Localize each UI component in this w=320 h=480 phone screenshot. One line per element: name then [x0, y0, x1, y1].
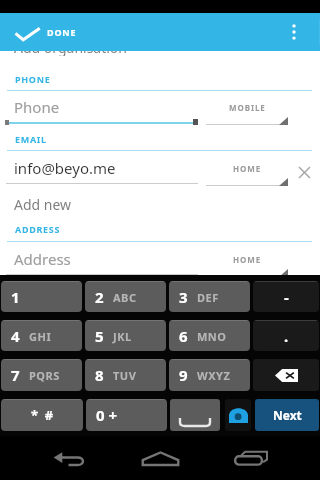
staticText: DONE: [47, 26, 77, 38]
button[interactable]: DONE: [0, 13, 93, 51]
staticText: Add new: [14, 195, 72, 214]
staticText: info@beyo.me: [14, 158, 116, 178]
staticText: WXYZ: [197, 368, 231, 383]
staticText: 9: [179, 365, 188, 385]
staticText: Address: [14, 249, 71, 269]
staticText: Add organisation: [14, 38, 127, 56]
staticText: 7: [11, 365, 20, 385]
staticText: -: [284, 287, 289, 307]
button[interactable]: * #: [1, 399, 83, 431]
staticText: Next: [273, 407, 302, 423]
button[interactable]: Space: [170, 399, 220, 431]
button[interactable]: 1: [1, 281, 82, 312]
staticText: ADDRESS: [15, 223, 61, 235]
staticText: PQRS: [29, 368, 60, 383]
button[interactable]: 6: [169, 320, 250, 351]
staticText: TUV: [113, 368, 137, 383]
staticText: * #: [31, 406, 54, 424]
staticText: MNO: [197, 329, 227, 344]
button[interactable]: .: [253, 320, 319, 351]
staticText: ABC: [113, 290, 137, 305]
staticText: PHONE: [15, 73, 51, 85]
button[interactable]: -: [253, 281, 319, 312]
staticText: 4: [11, 326, 20, 346]
button[interactable]: 4: [1, 320, 82, 351]
button[interactable]: Delete email: [290, 158, 318, 186]
staticText: EMAIL: [15, 133, 47, 145]
staticText: 2: [95, 287, 104, 307]
button[interactable]: 3: [169, 281, 250, 312]
button[interactable]: Backspace: [253, 359, 319, 391]
button[interactable]: Image input: [225, 399, 251, 431]
button[interactable]: Recent apps: [220, 443, 280, 473]
staticText: 6: [179, 326, 188, 346]
staticText: HOME: [233, 254, 262, 265]
button[interactable]: MOBILE: [206, 97, 288, 125]
button[interactable]: HOME: [206, 158, 288, 186]
button[interactable]: 0 +: [86, 399, 167, 431]
button[interactable]: Add new: [0, 195, 320, 215]
staticText: 1: [11, 287, 20, 307]
button[interactable]: 9: [169, 359, 250, 391]
staticText: Phone: [14, 97, 60, 117]
staticText: .: [284, 326, 289, 346]
button[interactable]: 2: [85, 281, 166, 312]
staticText: 8: [95, 365, 104, 385]
staticText: 3: [179, 287, 188, 307]
staticText: 0 +: [96, 405, 118, 425]
button[interactable]: Back: [38, 443, 98, 473]
staticText: JKL: [113, 329, 132, 344]
button[interactable]: Next: [255, 399, 319, 431]
button[interactable]: More options: [268, 13, 320, 51]
button[interactable]: 7: [1, 359, 82, 391]
button[interactable]: Add organisation: [0, 38, 320, 56]
staticText: GHI: [29, 329, 52, 344]
staticText: 5: [95, 326, 104, 346]
staticText: HOME: [233, 163, 262, 174]
staticText: MOBILE: [229, 102, 266, 113]
button[interactable]: Home: [130, 443, 190, 473]
button[interactable]: HOME: [206, 249, 288, 277]
staticText: DEF: [197, 290, 219, 305]
button[interactable]: 5: [85, 320, 166, 351]
button[interactable]: 8: [85, 359, 166, 391]
